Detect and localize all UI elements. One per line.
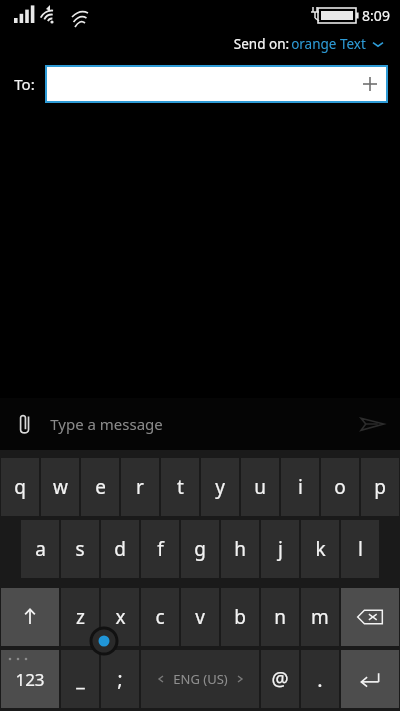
staticText: y xyxy=(215,474,225,500)
staticText: i xyxy=(298,474,303,500)
button[interactable]: m xyxy=(301,588,339,646)
staticText: h xyxy=(234,536,246,562)
button[interactable]: e xyxy=(81,458,119,516)
button[interactable]: Enter xyxy=(341,650,399,708)
button[interactable]: s xyxy=(61,520,99,578)
staticText: 123 xyxy=(15,668,45,691)
staticText: To: xyxy=(14,74,35,94)
staticText: m xyxy=(311,604,329,630)
staticText: d xyxy=(114,536,126,562)
staticText: r xyxy=(136,474,144,500)
staticText: j xyxy=(278,536,283,562)
button[interactable]: k xyxy=(301,520,339,578)
staticText: Type a message xyxy=(50,414,163,434)
button[interactable]: i xyxy=(281,458,319,516)
button[interactable]: Shift xyxy=(1,588,59,646)
staticText: o xyxy=(334,474,346,500)
button[interactable]: Send xyxy=(344,398,400,450)
staticText: g xyxy=(194,536,206,562)
button[interactable]: q xyxy=(1,458,39,516)
button[interactable]: ; xyxy=(101,650,139,708)
button[interactable]: Backspace xyxy=(341,588,399,646)
button[interactable]: w xyxy=(41,458,79,516)
button[interactable]: c xyxy=(141,588,179,646)
staticText: e xyxy=(95,474,106,500)
button[interactable]: l xyxy=(341,520,379,578)
staticText: q xyxy=(14,474,26,500)
staticText: v xyxy=(195,604,205,630)
button[interactable]: @ xyxy=(261,650,299,708)
button[interactable]: x xyxy=(101,588,139,646)
staticText: ; xyxy=(117,666,123,692)
button[interactable]: t xyxy=(161,458,199,516)
staticText: n xyxy=(274,604,286,630)
staticText: 8:09 xyxy=(362,6,390,25)
staticText: Send on: xyxy=(232,35,291,53)
staticText: l xyxy=(358,536,363,562)
button[interactable]: d xyxy=(101,520,139,578)
staticText: f xyxy=(157,536,164,562)
button[interactable]: z xyxy=(61,588,99,646)
button[interactable] xyxy=(45,65,388,103)
staticText: b xyxy=(234,604,246,630)
button[interactable]: f xyxy=(141,520,179,578)
button[interactable]: o xyxy=(321,458,359,516)
staticText: @ xyxy=(271,666,289,692)
button[interactable]: n xyxy=(261,588,299,646)
staticText: s xyxy=(75,536,85,562)
button[interactable]: Attach xyxy=(0,398,50,450)
button[interactable]: r xyxy=(121,458,159,516)
staticText: . xyxy=(317,666,323,693)
staticText: orange Text xyxy=(291,35,366,53)
staticText: p xyxy=(374,474,386,500)
staticText: u xyxy=(254,474,266,500)
button[interactable]: a xyxy=(21,520,59,578)
button[interactable]: v xyxy=(181,588,219,646)
button[interactable]: Send on: xyxy=(228,33,388,55)
button[interactable]: Space xyxy=(141,650,259,708)
staticText: k xyxy=(315,536,326,562)
button[interactable]: . xyxy=(301,650,339,708)
staticText: z xyxy=(76,604,85,630)
staticText: x xyxy=(115,604,126,630)
button[interactable]: j xyxy=(261,520,299,578)
staticText: ENG (US) xyxy=(173,670,228,688)
button[interactable]: y xyxy=(201,458,239,516)
button[interactable]: 123 xyxy=(1,650,59,708)
button[interactable]: u xyxy=(241,458,279,516)
button[interactable]: b xyxy=(221,588,259,646)
staticText: t xyxy=(177,474,184,500)
button[interactable]: g xyxy=(181,520,219,578)
button[interactable]: h xyxy=(221,520,259,578)
staticText: a xyxy=(35,536,46,562)
staticText: w xyxy=(53,474,68,500)
staticText: c xyxy=(155,604,165,630)
button[interactable]: p xyxy=(361,458,399,516)
button[interactable]: _ xyxy=(61,650,99,708)
staticText: _ xyxy=(76,666,85,692)
